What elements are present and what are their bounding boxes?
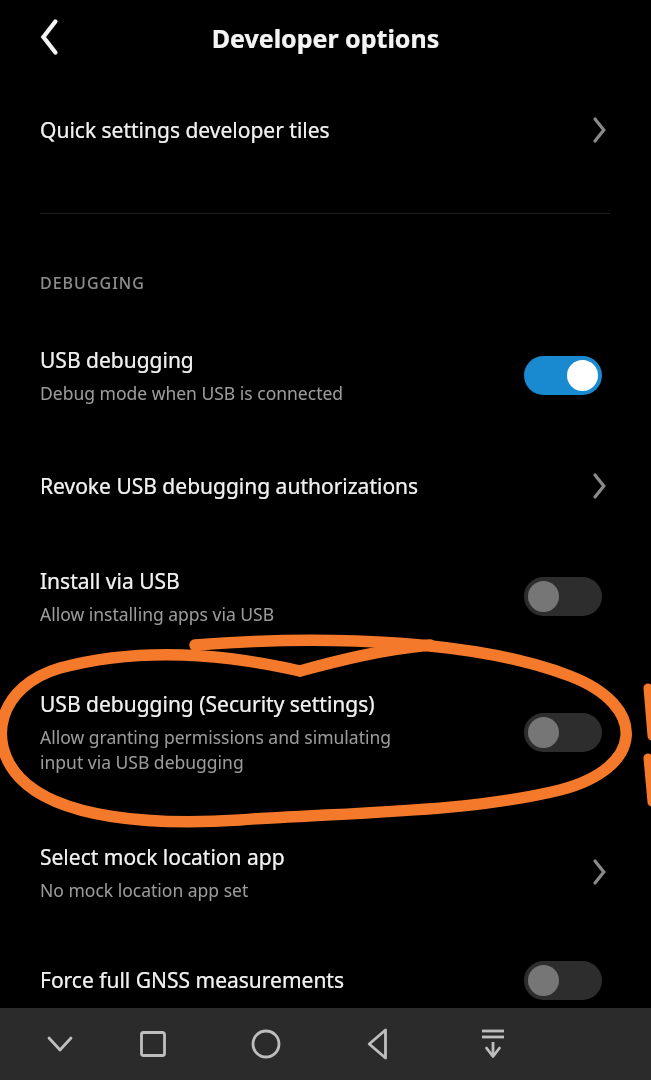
button[interactable]: Select mock location app xyxy=(0,826,651,918)
button[interactable]: USB debugging xyxy=(0,329,651,421)
staticText: Allow granting permissions and simulatin… xyxy=(40,725,392,774)
button[interactable]: Hide navigation bar xyxy=(469,1020,517,1068)
button[interactable]: Back xyxy=(355,1020,403,1068)
staticText: No mock location app set xyxy=(40,878,249,902)
button[interactable]: Recent apps xyxy=(129,1020,177,1068)
staticText: DEBUGGING xyxy=(40,272,145,294)
button[interactable]: Install via USB xyxy=(0,550,651,642)
button[interactable]: Home xyxy=(242,1020,290,1068)
button[interactable]: USB debugging (Security settings) xyxy=(0,672,651,792)
staticText: Allow installing apps via USB xyxy=(40,602,275,626)
staticText: Quick settings developer tiles xyxy=(40,116,330,145)
button[interactable]: Force full GNSS measurements xyxy=(0,950,651,1010)
button[interactable]: Revoke USB debugging authorizations xyxy=(0,456,651,516)
button[interactable]: Quick settings developer tiles xyxy=(0,100,651,160)
staticText: USB debugging (Security settings) xyxy=(40,690,375,719)
button[interactable]: Back xyxy=(22,9,78,65)
staticText: Select mock location app xyxy=(40,843,285,872)
staticText: Revoke USB debugging authorizations xyxy=(40,472,419,501)
staticText: Developer options xyxy=(0,21,651,55)
staticText: Force full GNSS measurements xyxy=(40,966,344,995)
button[interactable]: Collapse xyxy=(36,1020,84,1068)
staticText: USB debugging xyxy=(40,346,194,375)
staticText: Debug mode when USB is connected xyxy=(40,381,344,405)
staticText: Install via USB xyxy=(40,567,180,596)
